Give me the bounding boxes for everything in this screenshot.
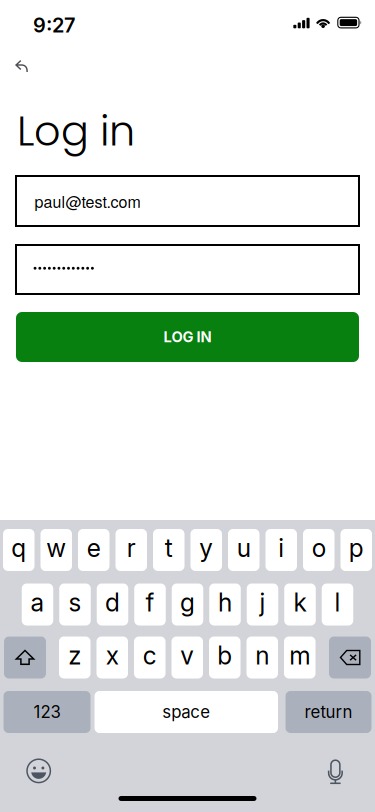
button[interactable]: u — [228, 529, 259, 571]
button[interactable]: k — [284, 583, 316, 625]
button[interactable]: LOG IN — [16, 312, 359, 362]
button[interactable]: q — [3, 529, 34, 571]
staticText: LOG IN — [163, 328, 211, 346]
button[interactable]: r — [115, 529, 147, 571]
staticText: s — [68, 588, 81, 617]
button[interactable]: s — [59, 583, 91, 625]
button[interactable]: i — [265, 529, 297, 571]
staticText: a — [30, 588, 44, 617]
button[interactable]: space — [94, 691, 278, 733]
staticText: 123 — [33, 702, 60, 722]
staticText: Log in — [17, 102, 135, 160]
staticText: u — [237, 533, 251, 563]
button[interactable]: e — [78, 529, 109, 571]
staticText: i — [278, 533, 284, 563]
button[interactable]: Back — [15, 60, 50, 92]
staticText: return — [304, 702, 352, 722]
staticText: v — [180, 641, 194, 670]
button[interactable]: w — [40, 529, 72, 571]
button[interactable]: m — [284, 636, 315, 678]
staticText: space — [162, 702, 210, 722]
staticText: g — [180, 588, 195, 617]
button[interactable]: t — [153, 529, 184, 571]
button[interactable]: l — [322, 583, 353, 625]
button[interactable]: g — [172, 583, 203, 625]
staticText: k — [293, 588, 306, 617]
button[interactable]: f — [134, 583, 166, 625]
staticText: f — [145, 588, 154, 617]
button[interactable]: b — [209, 636, 240, 678]
button[interactable]: Delete — [329, 636, 371, 678]
staticText: e — [87, 533, 101, 563]
button[interactable]: x — [96, 636, 128, 678]
staticText: y — [199, 533, 213, 563]
button[interactable]: 123 — [3, 691, 90, 733]
staticText: m — [289, 641, 310, 670]
staticText: l — [334, 588, 340, 617]
staticText: 9:27 — [33, 13, 75, 37]
staticText: o — [312, 533, 326, 563]
button[interactable]: a — [22, 583, 53, 625]
staticText: h — [218, 588, 232, 617]
staticText: t — [165, 533, 173, 563]
staticText: paul@test.com — [34, 189, 140, 212]
staticText: z — [68, 641, 81, 670]
button[interactable]: y — [190, 529, 222, 571]
staticText: q — [11, 533, 26, 563]
staticText: n — [255, 641, 269, 670]
staticText: d — [105, 588, 120, 617]
staticText: p — [349, 533, 364, 563]
button[interactable]: z — [59, 636, 90, 678]
staticText: w — [46, 533, 66, 563]
staticText: c — [143, 641, 157, 670]
button[interactable]: Dictate — [314, 751, 356, 793]
button[interactable]: c — [134, 636, 165, 678]
button[interactable]: h — [209, 583, 241, 625]
button[interactable]: return — [285, 691, 371, 733]
button[interactable]: v — [171, 636, 203, 678]
button[interactable]: Emoji — [18, 750, 60, 792]
staticText: x — [106, 641, 119, 670]
button[interactable]: j — [247, 583, 278, 625]
button[interactable]: d — [97, 583, 128, 625]
button[interactable]: o — [303, 529, 334, 571]
staticText: j — [259, 588, 265, 617]
button[interactable]: Shift — [4, 636, 46, 678]
button[interactable]: n — [246, 636, 278, 678]
button[interactable]: p — [340, 529, 372, 571]
staticText: b — [217, 641, 232, 670]
staticText: r — [127, 533, 136, 563]
